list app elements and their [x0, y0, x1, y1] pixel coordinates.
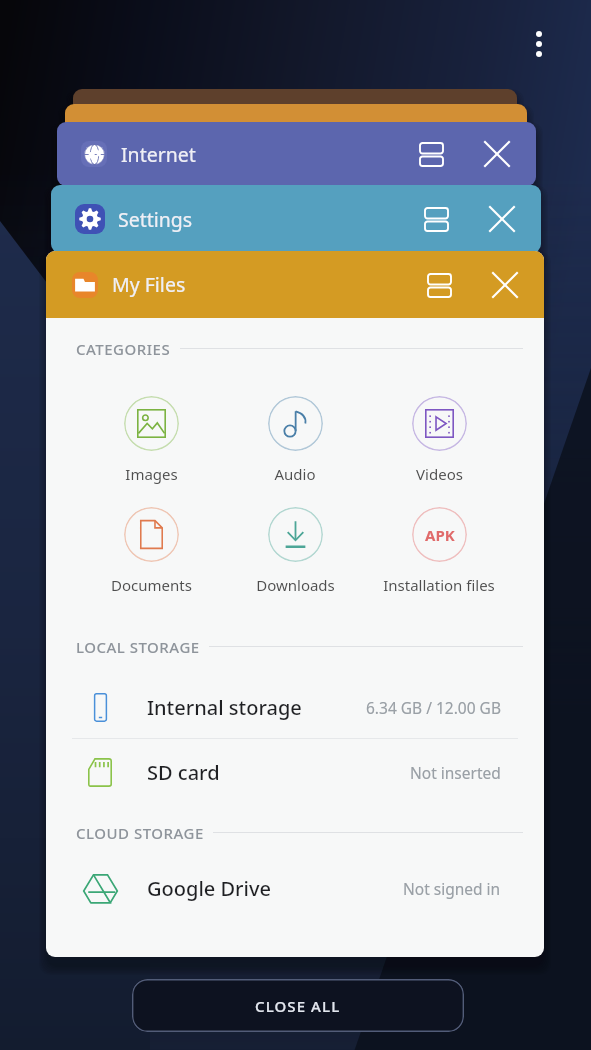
button[interactable]: Internal storage — [46, 677, 544, 737]
button[interactable]: Split screen — [415, 198, 457, 240]
button[interactable] — [65, 104, 527, 144]
staticText: SD card — [147, 759, 220, 786]
staticText: 6.34 GB / 12.00 GB — [366, 697, 501, 718]
button[interactable] — [124, 396, 179, 451]
button[interactable]: Split screen — [418, 264, 460, 306]
staticText: Internal storage — [147, 694, 302, 721]
button[interactable]: More options — [516, 12, 561, 76]
button[interactable]: CLOSE ALL — [132, 979, 464, 1032]
staticText: Google Drive — [147, 875, 271, 902]
staticText: Downloads — [256, 575, 335, 595]
staticText: Audio — [274, 464, 316, 484]
staticText: Documents — [111, 575, 192, 595]
staticText: Not signed in — [403, 878, 501, 899]
staticText: Videos — [416, 464, 463, 484]
button[interactable]: Internet — [57, 122, 536, 186]
button[interactable]: Split screen — [410, 133, 452, 175]
button[interactable] — [124, 507, 179, 562]
button[interactable]: APK — [412, 507, 467, 562]
staticText: CATEGORIES — [76, 339, 171, 357]
staticText: Installation files — [383, 575, 495, 595]
staticText: My Files — [112, 271, 418, 298]
button[interactable] — [412, 396, 467, 451]
button[interactable]: Google Drive — [46, 858, 544, 918]
button[interactable] — [73, 89, 517, 129]
staticText: APK — [425, 525, 455, 545]
staticText: CLOSE ALL — [255, 996, 341, 1016]
button[interactable] — [268, 507, 323, 562]
button[interactable]: Close — [476, 133, 518, 175]
button[interactable]: Close — [484, 264, 526, 306]
button[interactable]: Settings — [51, 185, 541, 253]
staticText: LOCAL STORAGE — [76, 637, 200, 655]
button[interactable]: My Files — [46, 251, 544, 318]
staticText: CLOUD STORAGE — [76, 823, 204, 841]
button[interactable]: SD card — [46, 742, 544, 802]
button[interactable] — [268, 396, 323, 451]
staticText: Settings — [118, 206, 415, 233]
staticText: Not inserted — [410, 762, 501, 783]
button[interactable]: Close — [481, 198, 523, 240]
staticText: Images — [125, 464, 178, 484]
staticText: Internet — [121, 141, 410, 168]
